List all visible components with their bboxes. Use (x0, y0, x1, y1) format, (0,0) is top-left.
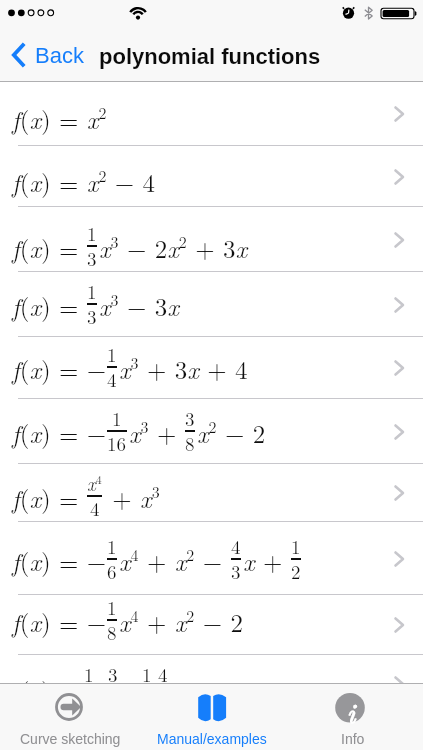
staticText: f(x) = x2 − 4 (12, 164, 156, 199)
staticText: x3 + (129, 415, 185, 450)
staticText: 1 (291, 533, 301, 560)
staticText: f(x) = − (12, 415, 107, 450)
staticText: + x3 (104, 480, 160, 515)
staticText: x4 + x2 − (119, 543, 231, 578)
staticText: 1 (107, 533, 117, 560)
staticText: 8 (185, 430, 195, 457)
staticText: 1 (84, 661, 94, 688)
staticText: Back (35, 43, 84, 68)
staticText: x4 + x2 − 2 (119, 604, 243, 639)
staticText: 1 (112, 405, 122, 432)
staticText: 8 (107, 619, 117, 646)
staticText: f(x) = (12, 288, 87, 323)
staticText: x3 + 3x + 4 (119, 351, 248, 386)
staticText: 3 (87, 245, 97, 272)
staticText: x2 − 2 (197, 415, 266, 450)
button[interactable]: Curve sketching (0, 683, 141, 750)
staticText: 1 (87, 220, 97, 247)
button[interactable]: f(x) = x2 − 4 (0, 146, 423, 207)
staticText: f(x) = (12, 230, 87, 265)
button[interactable]: f(x) = (0, 272, 423, 337)
staticText: 1 (87, 278, 97, 305)
staticText: 1 (107, 341, 117, 368)
button[interactable]: f(x) = (0, 464, 423, 522)
button[interactable]: f(x) = (0, 655, 423, 750)
staticText: polynomial functions (99, 44, 321, 69)
staticText: x4 (87, 470, 102, 497)
staticText: 1 (142, 661, 152, 688)
button[interactable]: f(x) = − (0, 399, 423, 464)
staticText: x3 − 3x (99, 288, 179, 323)
staticText: 4 (231, 533, 241, 560)
staticText: 3 (108, 661, 118, 688)
button[interactable]: f(x) = − (0, 595, 423, 655)
staticText: 2 (291, 558, 301, 585)
staticText: Curve sketching (20, 731, 121, 747)
staticText: 1 (107, 594, 117, 621)
staticText: 4 (158, 661, 168, 688)
staticText: 16 (107, 430, 127, 457)
button[interactable]: f(x) = − (0, 522, 423, 595)
staticText: 3 (231, 558, 241, 585)
staticText: f(x) = − (12, 351, 107, 386)
button[interactable]: f(x) = x2 (0, 82, 423, 146)
staticText: Manual/examples (157, 731, 267, 747)
staticText: Info (341, 731, 365, 747)
staticText: 4 (90, 495, 100, 522)
button[interactable]: i (282, 683, 423, 750)
staticText: f(x) = x2 (12, 101, 107, 136)
staticText: x + (243, 543, 291, 578)
button[interactable]: Back (0, 42, 84, 68)
staticText: 3 (87, 303, 97, 330)
button[interactable]: f(x) = − (0, 337, 423, 399)
staticText: i (347, 693, 356, 731)
button[interactable]: Manual/examples (141, 683, 282, 750)
staticText: f(x) = (12, 672, 79, 707)
staticText: 6 (107, 558, 117, 585)
staticText: f(x) = (12, 480, 87, 515)
staticText: 3 (185, 405, 195, 432)
staticText: f(x) = − (12, 543, 107, 578)
staticText: f(x) = − (12, 604, 107, 639)
staticText: x3 − 2x2 + 3x (99, 230, 248, 265)
button[interactable]: f(x) = (0, 207, 423, 272)
staticText: 4 (107, 366, 117, 393)
